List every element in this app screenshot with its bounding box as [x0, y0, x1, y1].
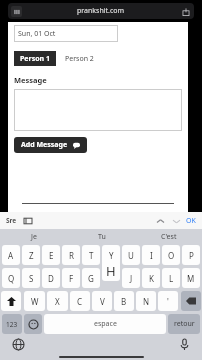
staticText: espace	[94, 319, 117, 329]
staticText: B	[121, 296, 127, 307]
staticText: P	[189, 250, 194, 261]
staticText: I	[150, 250, 153, 261]
button[interactable]: 123	[2, 314, 22, 334]
staticText: F	[69, 273, 74, 284]
button[interactable]: J	[122, 268, 140, 288]
button[interactable]: Dictation	[176, 336, 192, 352]
button[interactable]: Share	[180, 6, 191, 17]
staticText: OK	[186, 216, 196, 226]
button[interactable]: OK	[186, 216, 196, 226]
staticText: V	[100, 296, 105, 307]
button[interactable]: R	[62, 245, 80, 265]
staticText: A	[8, 250, 14, 261]
staticText: X	[55, 296, 60, 307]
button[interactable]: O	[162, 245, 180, 265]
staticText: Message	[14, 75, 47, 85]
button[interactable]: A	[2, 245, 20, 265]
button[interactable]: Emoji	[24, 314, 42, 334]
staticText: E	[49, 250, 54, 261]
staticText: Y	[109, 250, 114, 261]
staticText: J	[130, 273, 133, 284]
staticText: K	[149, 273, 154, 284]
button[interactable]: G	[82, 268, 100, 288]
button[interactable]: Person 2	[61, 51, 98, 66]
button[interactable]: X	[47, 291, 68, 311]
staticText: N	[143, 296, 150, 307]
button[interactable]: U	[122, 245, 140, 265]
staticText: H	[106, 262, 116, 280]
staticText: T	[89, 250, 94, 261]
staticText: Sun, 01 Oct	[18, 29, 56, 39]
button[interactable]: D	[42, 268, 60, 288]
staticText: Je	[31, 232, 37, 242]
staticText: G	[88, 273, 94, 284]
staticText: Add Message	[21, 140, 68, 150]
button[interactable]: L	[162, 268, 180, 288]
button[interactable]: Add Message	[14, 137, 87, 153]
button[interactable]	[14, 89, 182, 131]
staticText: C	[77, 296, 83, 307]
staticText: Q	[8, 273, 15, 284]
button[interactable]: Tu	[68, 229, 135, 245]
button[interactable]: Q	[2, 268, 20, 288]
button[interactable]: B	[114, 291, 134, 311]
button[interactable]: Sun, 01 Oct	[14, 25, 118, 42]
button[interactable]: E	[42, 245, 60, 265]
staticText: '	[167, 296, 169, 307]
staticText: 123	[6, 320, 18, 329]
staticText: S	[29, 273, 34, 284]
button[interactable]: P	[182, 245, 200, 265]
button[interactable]: Autofill	[23, 216, 32, 225]
button[interactable]: V	[92, 291, 112, 311]
button[interactable]: M	[182, 268, 200, 288]
button[interactable]: retour	[168, 314, 200, 334]
button[interactable]: Y	[102, 245, 120, 265]
button[interactable]: T	[82, 245, 100, 265]
button[interactable]: S	[22, 268, 40, 288]
button[interactable]: Reader view	[11, 6, 22, 17]
button[interactable]: Change keyboard	[10, 336, 26, 352]
staticText: Sre	[6, 216, 17, 225]
staticText: Z	[29, 250, 34, 261]
button[interactable]: I	[142, 245, 160, 265]
button[interactable]: N	[136, 291, 156, 311]
staticText: C'est	[161, 232, 177, 242]
staticText: M	[187, 273, 195, 284]
button[interactable]: Person 1	[14, 51, 56, 66]
button[interactable]: K	[142, 268, 160, 288]
button[interactable]: C'est	[135, 229, 202, 245]
staticText: O	[168, 250, 175, 261]
button[interactable]: F	[62, 268, 80, 288]
staticText: D	[48, 273, 54, 284]
staticText: Person 1	[20, 54, 50, 64]
button[interactable]: Next field	[170, 215, 182, 227]
button[interactable]: Z	[22, 245, 40, 265]
staticText: prankshit.com	[77, 6, 125, 16]
button[interactable]: H	[102, 268, 120, 288]
button[interactable]: Previous field	[154, 215, 166, 227]
staticText: R	[69, 250, 74, 261]
button[interactable]: Je	[0, 229, 68, 245]
staticText: Tu	[98, 232, 106, 242]
staticText: W	[31, 296, 39, 307]
button[interactable]: W	[24, 291, 45, 311]
button[interactable]: C	[70, 291, 90, 311]
button[interactable]: Key	[1, 291, 21, 311]
button[interactable]: '	[158, 291, 178, 311]
staticText: Person 2	[65, 54, 94, 64]
button[interactable]: Key	[181, 291, 201, 311]
button[interactable]: espace	[44, 314, 166, 334]
staticText: L	[169, 273, 174, 284]
staticText: U	[128, 250, 134, 261]
staticText: retour	[174, 319, 195, 329]
